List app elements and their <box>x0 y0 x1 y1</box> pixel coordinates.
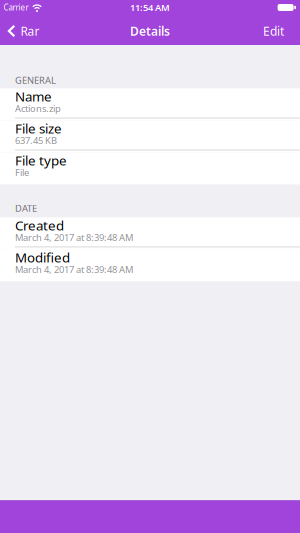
staticText: March 4, 2017 at 8:39:48 AM <box>15 231 133 243</box>
staticText: Details <box>130 23 170 39</box>
staticText: 11:54 AM <box>130 1 170 14</box>
staticText: File <box>15 166 29 179</box>
staticText: DATE <box>15 202 37 214</box>
button[interactable]: Back <box>0 23 39 39</box>
staticText: Edit <box>263 23 284 39</box>
button[interactable]: Edit <box>263 23 300 39</box>
staticText: 637.45 KB <box>15 134 57 147</box>
staticText: Name <box>15 87 52 105</box>
staticText: File type <box>15 151 67 169</box>
staticText: Modified <box>15 248 70 266</box>
staticText: Carrier <box>3 2 28 13</box>
staticText: GENERAL <box>15 74 56 86</box>
staticText: March 4, 2017 at 8:39:48 AM <box>15 263 133 275</box>
staticText: File size <box>15 119 62 137</box>
staticText: Created <box>15 216 64 234</box>
staticText: Rar <box>20 23 39 39</box>
staticText: Actions.zip <box>15 102 61 115</box>
